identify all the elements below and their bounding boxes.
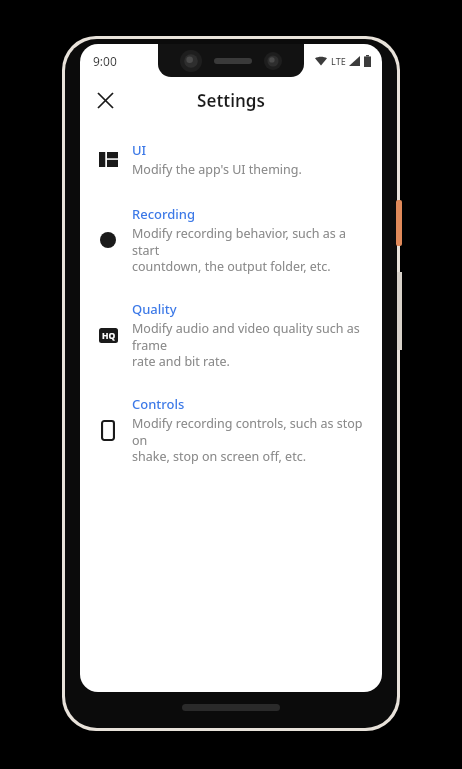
staticText: UI (132, 141, 147, 159)
button[interactable]: Recording (80, 203, 382, 276)
button[interactable]: HQ (80, 298, 382, 371)
staticText: Modify recording behavior, such as a sta… (132, 225, 370, 274)
staticText: HQ (102, 330, 116, 342)
staticText: Controls (132, 395, 185, 413)
staticText: Modify the app's UI theming. (132, 161, 302, 178)
staticText: LTE (331, 55, 346, 67)
button[interactable]: UI (80, 137, 382, 181)
button[interactable]: Close (86, 81, 124, 119)
staticText: Settings (197, 89, 265, 112)
staticText: Recording (132, 205, 196, 223)
staticText: 9:00 (93, 53, 117, 69)
staticText: Quality (132, 300, 177, 318)
button[interactable]: Controls (80, 393, 382, 466)
staticText: Modify recording controls, such as stop … (132, 415, 370, 464)
staticText: Modify audio and video quality such as f… (132, 320, 370, 369)
